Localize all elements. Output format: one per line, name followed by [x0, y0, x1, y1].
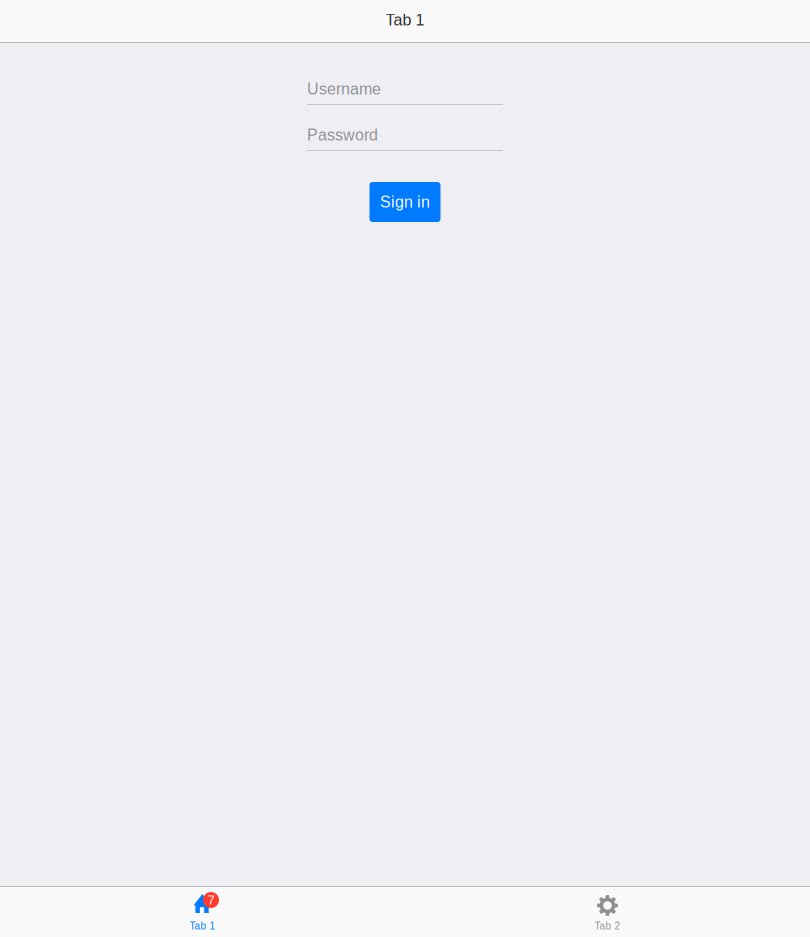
staticText: Sign in — [380, 193, 430, 211]
button[interactable]: Sign in — [369, 182, 440, 222]
staticText: Tab 1 — [189, 920, 215, 932]
staticText: Tab 1 — [385, 11, 424, 29]
staticText: 7 — [207, 893, 214, 907]
staticText: Password — [307, 126, 378, 144]
staticText: Tab 2 — [594, 920, 620, 932]
button[interactable]: Tab 2 — [405, 887, 810, 937]
button[interactable]: 7 — [0, 887, 405, 937]
staticText: Username — [307, 80, 381, 98]
